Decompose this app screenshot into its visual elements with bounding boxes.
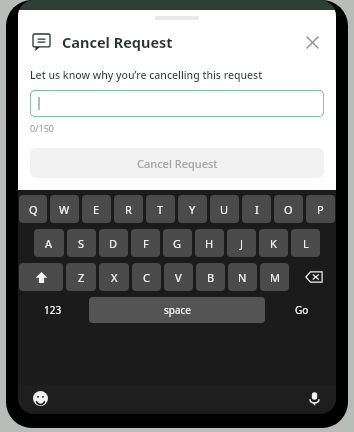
button[interactable]: O — [274, 195, 303, 223]
staticText: A — [45, 236, 53, 251]
staticText: Go — [295, 303, 309, 317]
staticText: Q — [29, 202, 38, 217]
staticText: S — [78, 236, 85, 251]
button[interactable]: 123 — [19, 297, 86, 323]
button[interactable]: Message — [30, 31, 52, 53]
button[interactable]: S — [67, 229, 96, 257]
staticText: I — [255, 202, 259, 217]
button[interactable]: L — [291, 229, 320, 257]
button[interactable]: P — [306, 195, 335, 223]
button[interactable]: space — [89, 297, 265, 323]
staticText: P — [317, 202, 324, 217]
staticText: B — [207, 270, 215, 285]
staticText: V — [175, 270, 182, 285]
staticText: Cancel Request — [62, 32, 173, 52]
staticText: Y — [189, 202, 196, 217]
staticText: Z — [78, 270, 85, 285]
staticText: 123 — [44, 303, 62, 317]
button[interactable]: F — [131, 229, 160, 257]
button[interactable]: U — [210, 195, 239, 223]
button[interactable]: Shift — [19, 263, 63, 291]
button[interactable]: T — [146, 195, 175, 223]
staticText: W — [59, 202, 70, 217]
button[interactable]: Close — [300, 30, 324, 54]
button[interactable]: W — [50, 195, 79, 223]
button[interactable]: Backspace — [292, 263, 335, 291]
staticText: C — [143, 270, 150, 285]
button[interactable]: H — [195, 229, 224, 257]
staticText: N — [238, 270, 247, 285]
button[interactable]: V — [164, 263, 193, 291]
staticText: T — [157, 202, 164, 217]
button[interactable]: Go — [268, 297, 335, 323]
button[interactable]: I — [242, 195, 271, 223]
staticText: K — [270, 236, 277, 251]
button[interactable]: G — [163, 229, 192, 257]
staticText: G — [173, 236, 182, 251]
button[interactable]: Z — [66, 263, 96, 291]
staticText: U — [220, 202, 229, 217]
button[interactable]: E — [82, 195, 111, 223]
button[interactable]: D — [99, 229, 128, 257]
button[interactable] — [30, 90, 324, 117]
button[interactable]: A — [34, 229, 64, 257]
staticText: space — [164, 303, 191, 317]
button[interactable]: K — [259, 229, 288, 257]
staticText: M — [270, 270, 280, 285]
staticText: F — [143, 236, 149, 251]
staticText: X — [111, 270, 118, 285]
staticText: L — [303, 236, 309, 251]
staticText: E — [93, 202, 100, 217]
button[interactable]: Cancel Request — [30, 148, 324, 178]
staticText: 0/150 — [30, 122, 54, 134]
staticText: Let us know why you’re cancelling this r… — [30, 68, 263, 82]
button[interactable]: R — [114, 195, 143, 223]
staticText: Cancel Request — [137, 156, 218, 171]
button[interactable]: X — [99, 263, 129, 291]
staticText: O — [284, 202, 293, 217]
button[interactable]: C — [132, 263, 161, 291]
button[interactable]: Q — [19, 195, 47, 223]
button[interactable]: M — [260, 263, 289, 291]
staticText: J — [240, 236, 244, 251]
staticText: D — [109, 236, 118, 251]
staticText: R — [125, 202, 132, 217]
button[interactable]: Voice input — [305, 389, 323, 407]
button[interactable]: N — [228, 263, 257, 291]
button[interactable]: J — [227, 229, 256, 257]
button[interactable]: B — [196, 263, 225, 291]
staticText: H — [205, 236, 214, 251]
button[interactable]: Emoji — [31, 389, 49, 407]
button[interactable]: Y — [178, 195, 207, 223]
